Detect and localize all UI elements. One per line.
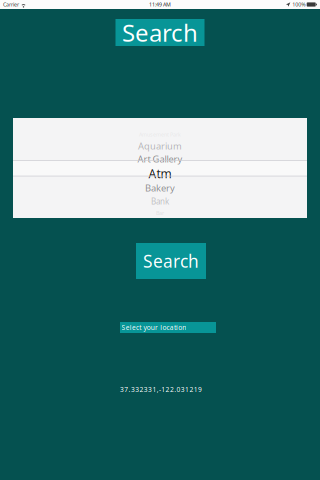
staticText: Art Gallery <box>137 153 182 165</box>
staticText: Bakery <box>145 182 175 194</box>
staticText: Carrier <box>3 1 19 8</box>
staticText: 11:49 AM <box>149 1 171 8</box>
button[interactable]: Search <box>136 243 206 279</box>
staticText: 37.332331,-122.031219 <box>120 385 202 394</box>
staticText: Search <box>122 17 198 48</box>
staticText: Bank <box>151 196 169 207</box>
staticText: Search <box>143 249 199 272</box>
staticText: Bar <box>156 209 164 217</box>
staticText: Select your location <box>121 323 186 332</box>
staticText: 100% <box>292 1 305 8</box>
staticText: Aquarium <box>138 140 182 152</box>
staticText: Atm <box>148 165 171 181</box>
button[interactable]: Select your location <box>120 322 216 333</box>
